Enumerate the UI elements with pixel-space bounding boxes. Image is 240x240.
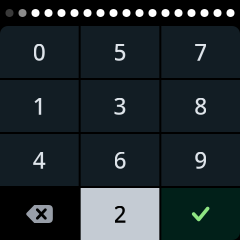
button[interactable]: 6 <box>81 134 159 186</box>
staticText: 7 <box>194 37 207 67</box>
button[interactable]: Confirm <box>161 188 240 240</box>
staticText: 0 <box>33 37 46 67</box>
button[interactable]: 1 <box>0 80 79 132</box>
staticText: 2 <box>113 199 126 229</box>
button[interactable]: 9 <box>161 134 240 186</box>
button[interactable]: 5 <box>81 26 159 78</box>
staticText: 8 <box>194 91 207 121</box>
staticText: 4 <box>33 145 46 175</box>
staticText: 1 <box>33 91 46 121</box>
button[interactable]: 7 <box>161 26 240 78</box>
button[interactable]: Delete <box>0 188 79 240</box>
button[interactable]: 2 <box>81 188 159 240</box>
staticText: 5 <box>113 37 126 67</box>
button[interactable]: 8 <box>161 80 240 132</box>
staticText: 9 <box>194 145 207 175</box>
button[interactable]: 4 <box>0 134 79 186</box>
button[interactable]: 0 <box>0 26 79 78</box>
staticText: 6 <box>113 145 126 175</box>
staticText: 3 <box>113 91 126 121</box>
button[interactable]: 3 <box>81 80 159 132</box>
